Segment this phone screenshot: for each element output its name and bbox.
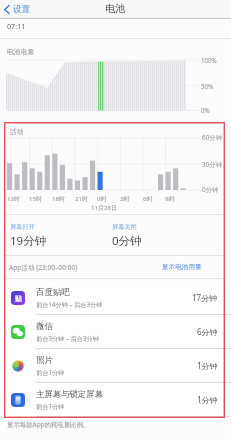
staticText: 主屏幕与锁定屏幕 [36, 389, 104, 400]
button[interactable]: 微信 [0, 315, 231, 349]
staticText: 15时 [29, 194, 43, 202]
staticText: 照片 [36, 355, 53, 366]
staticText: 0分钟 [202, 185, 219, 194]
staticText: 17分钟 [192, 292, 218, 303]
staticText: 9时 [165, 194, 175, 202]
staticText: 前台3分钟 – 后台3分钟 [36, 334, 99, 342]
staticText: 21时 [75, 194, 89, 202]
staticText: 100% [201, 56, 217, 64]
staticText: 30分钟 [202, 160, 223, 169]
button[interactable]: 设置 [3, 2, 31, 17]
staticText: 前台14分钟 – 后台3分钟 [36, 300, 103, 308]
staticText: 0% [201, 106, 210, 114]
button[interactable]: 显示电池用量 [162, 263, 202, 271]
button[interactable]: 照片 [0, 349, 231, 383]
staticText: 6时 [143, 194, 153, 202]
staticText: 屏幕打开 [10, 223, 35, 231]
staticText: 显示电池用量 [162, 263, 202, 271]
staticText: 显示每款App的耗电量比例。 [7, 420, 90, 429]
staticText: 贴 [15, 294, 22, 303]
button[interactable]: 贴 [0, 281, 231, 315]
staticText: 07:11 [7, 21, 26, 31]
staticText: 微信 [36, 321, 53, 332]
staticText: 1分钟 [197, 360, 218, 371]
staticText: 0分钟 [112, 233, 142, 249]
staticText: 0时 [97, 194, 107, 202]
staticText: 11月26日 [91, 203, 118, 211]
staticText: 设置 [13, 4, 31, 15]
staticText: 60分钟 [202, 133, 223, 142]
staticText: 19分钟 [10, 233, 47, 249]
staticText: 屏幕关闭 [112, 223, 137, 231]
staticText: 百度贴吧 [36, 287, 70, 298]
button[interactable]: 主屏幕与锁定屏幕 [0, 383, 231, 417]
staticText: App活动 (23:00–00:00) [9, 263, 78, 272]
staticText: 18时 [52, 194, 66, 202]
staticText: 电池电量 [7, 47, 35, 56]
staticText: 1分钟 [197, 394, 218, 405]
staticText: 3时 [120, 194, 130, 202]
staticText: 前台1分钟 [36, 402, 65, 410]
staticText: 6分钟 [197, 326, 218, 337]
staticText: 前台1分钟 [36, 368, 65, 376]
staticText: 12时 [7, 194, 21, 202]
staticText: 活动 [10, 127, 24, 136]
staticText: 50% [201, 82, 214, 90]
staticText: 电池 [105, 2, 126, 15]
